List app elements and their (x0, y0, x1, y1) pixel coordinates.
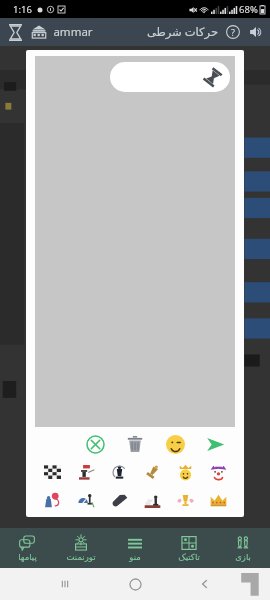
button[interactable]: Balloon (35, 487, 69, 513)
button[interactable]: Board (35, 459, 69, 485)
button[interactable]: Club (28, 21, 50, 43)
button[interactable]: Sound (246, 22, 266, 42)
button[interactable]: Queen move (103, 459, 136, 485)
button[interactable]: Emoji wink (155, 431, 195, 457)
button[interactable]: Send (195, 431, 235, 457)
button[interactable]: Crown face (169, 459, 202, 485)
staticText: ammar (53, 24, 93, 40)
staticText: تورنمنت (66, 552, 96, 562)
button[interactable]: Back (199, 578, 211, 590)
button[interactable]: تورنمنت (54, 528, 108, 568)
staticText: 1:16 (13, 3, 32, 16)
staticText: بازی (235, 552, 251, 562)
staticText: 68% (239, 3, 258, 16)
button[interactable]: Rook logo (4, 21, 26, 43)
staticText: حرکات شرطی (147, 24, 218, 40)
button[interactable]: Delete (115, 431, 155, 457)
button[interactable]: Home (129, 578, 142, 591)
button[interactable]: Clear (75, 431, 115, 457)
button[interactable]: Bishop (136, 459, 169, 485)
staticText: پیامها (18, 552, 37, 562)
button[interactable]: Help (223, 22, 243, 42)
staticText: تاکتیک (178, 552, 200, 562)
button[interactable]: بازی (216, 528, 270, 568)
button[interactable]: پیامها (0, 528, 54, 568)
button[interactable]: Podium (136, 487, 169, 513)
button[interactable]: تاکتیک (162, 528, 216, 568)
staticText: منو (129, 552, 141, 562)
button[interactable]: Trophy (169, 487, 202, 513)
button[interactable]: منو (108, 528, 162, 568)
button[interactable]: Crown (202, 487, 235, 513)
button[interactable]: Stamp (69, 459, 103, 485)
button[interactable]: Sock (103, 487, 136, 513)
staticText: ? (231, 26, 235, 38)
button[interactable]: Recents (59, 578, 71, 590)
button[interactable]: Clock piece (69, 487, 103, 513)
button[interactable]: Clown (202, 459, 235, 485)
button[interactable] (110, 62, 230, 92)
